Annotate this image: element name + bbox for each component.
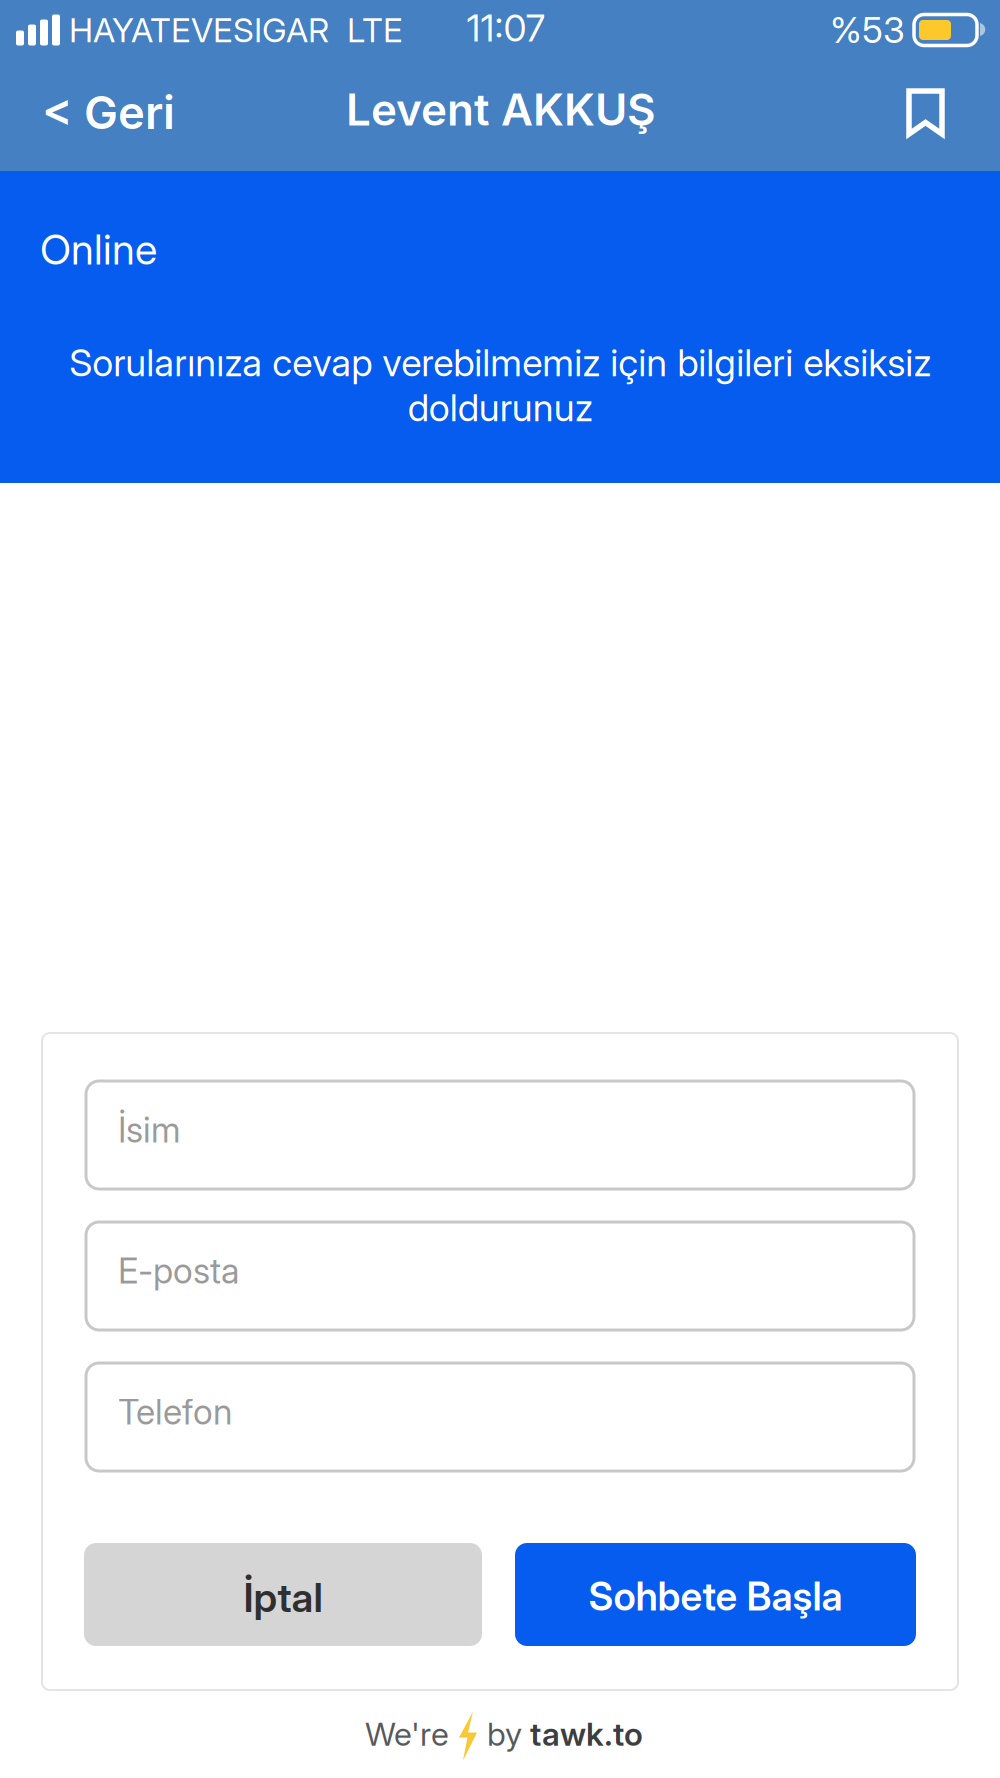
button[interactable]: Sohbete Başla [515, 1543, 916, 1646]
staticText: Sohbete Başla [588, 1573, 842, 1620]
staticText: HAYATEVESIGAR LTE [60, 10, 403, 50]
button[interactable]: < Geri [0, 60, 230, 171]
staticText: Levent AKKUŞ [346, 83, 656, 136]
staticText: < Geri [42, 85, 175, 140]
button[interactable]: Kaydet [830, 60, 1000, 171]
staticText: Sorularınıza cevap verebilmemiz için bil… [69, 340, 931, 430]
staticText: 11:07 [466, 5, 545, 51]
staticText: by [479, 1715, 530, 1753]
staticText: tawk.to [530, 1715, 643, 1753]
button[interactable]: İptal [84, 1543, 482, 1646]
staticText: We're [365, 1715, 457, 1753]
staticText: %53 [830, 8, 914, 52]
staticText: İsim [118, 1109, 181, 1151]
staticText: Telefon [118, 1391, 232, 1433]
staticText: İptal [243, 1573, 322, 1622]
staticText: Online [40, 224, 157, 274]
staticText: E-posta [118, 1250, 239, 1292]
